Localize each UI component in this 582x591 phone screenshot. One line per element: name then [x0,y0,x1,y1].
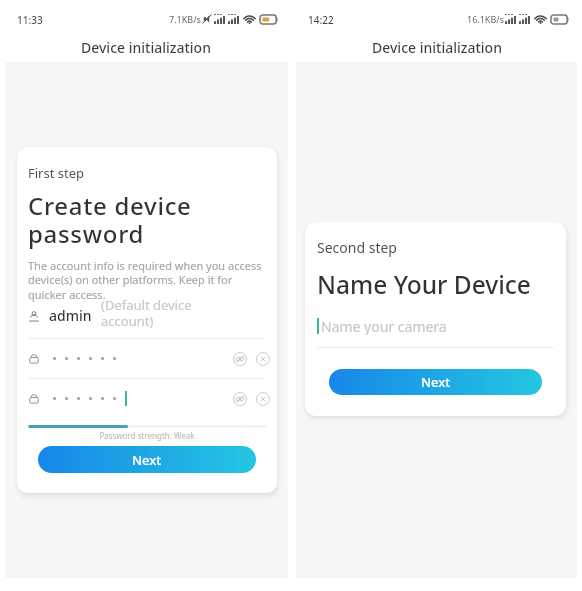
other: Password [28,353,40,365]
button[interactable]: Clear [256,392,270,406]
staticText: Device initialization [81,38,211,57]
staticText: (Default device account) [101,296,209,329]
other: Account [28,310,40,322]
staticText: 11:33 [17,13,43,27]
staticText: Name your camera [321,317,447,335]
staticText: The account info is required when you ac… [28,258,266,303]
button[interactable]: Show password [233,392,247,406]
staticText: Second step [317,238,397,257]
button[interactable]: Password [28,379,266,418]
staticText: Password strength: Weak [28,430,266,441]
button[interactable]: Next [329,369,542,395]
button[interactable]: Clear [256,352,270,366]
staticText: 16.1KB/s [467,13,504,25]
staticText: Next [132,451,162,469]
button[interactable]: Name your camera [317,317,554,335]
staticText: Device initialization [372,38,502,57]
staticText: admin [49,306,92,325]
staticText: Next [421,373,451,391]
button[interactable]: Account [28,303,266,338]
staticText: Name Your Device [317,268,531,301]
other: Password [28,393,40,405]
button[interactable]: Next [38,446,256,473]
staticText: 14:22 [308,13,334,27]
staticText: Create device password [28,189,266,250]
button[interactable]: Password [28,339,266,378]
button[interactable]: Show password [233,352,247,366]
staticText: 7.1KB/s [169,13,201,25]
staticText: First step [28,164,85,182]
